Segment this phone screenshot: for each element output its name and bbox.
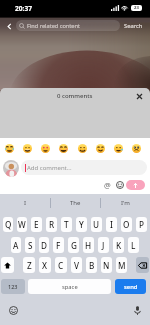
staticText: E <box>34 219 39 230</box>
button[interactable]: L <box>128 237 139 253</box>
staticText: I <box>24 199 27 207</box>
button[interactable]: H <box>83 237 94 253</box>
button[interactable]: Emoji reaction <box>129 141 144 156</box>
staticText: Find related content <box>27 22 80 30</box>
button[interactable]: F <box>53 237 64 253</box>
button[interactable]: R <box>46 217 57 232</box>
button[interactable]: Shift <box>1 257 14 273</box>
staticText: 23 <box>134 5 139 11</box>
staticText: R <box>49 219 55 230</box>
staticText: O <box>123 219 130 230</box>
button[interactable]: V <box>71 257 82 273</box>
staticText: L <box>131 240 136 251</box>
staticText: F <box>56 240 61 251</box>
staticText: space <box>62 283 78 291</box>
button[interactable]: Mention <box>102 179 113 190</box>
staticText: V <box>74 260 80 271</box>
button[interactable]: O <box>121 217 132 232</box>
staticText: J <box>102 240 105 251</box>
button[interactable]: D <box>39 237 49 253</box>
button[interactable]: Add comment... <box>21 160 147 175</box>
staticText: I <box>110 219 113 230</box>
button[interactable]: Voice input <box>131 304 143 316</box>
button[interactable]: Emoji reaction <box>75 141 90 156</box>
button[interactable]: Close <box>133 90 145 102</box>
button[interactable]: M <box>116 257 127 273</box>
staticText: The <box>70 199 81 207</box>
staticText: Add comment... <box>27 164 72 172</box>
button[interactable]: I <box>106 217 117 232</box>
button[interactable]: Search <box>124 22 143 30</box>
staticText: S <box>28 240 33 251</box>
staticText: M <box>118 260 126 271</box>
button[interactable]: Emoji <box>114 179 125 190</box>
staticText: A <box>13 240 19 251</box>
button[interactable]: Emoji reaction <box>38 141 53 156</box>
button[interactable]: T <box>61 217 72 232</box>
button[interactable]: Emoji reaction <box>93 141 108 156</box>
button[interactable]: Find related content <box>16 20 120 31</box>
button[interactable]: W <box>17 217 27 232</box>
button[interactable]: Emoji reaction <box>56 141 71 156</box>
button[interactable]: X <box>39 257 51 273</box>
button[interactable]: Q <box>3 217 13 232</box>
button[interactable]: space <box>28 279 111 294</box>
staticText: @ <box>104 180 111 190</box>
button[interactable]: P <box>136 217 147 232</box>
button[interactable]: Back <box>2 19 16 33</box>
button[interactable]: 123 <box>1 279 25 294</box>
button[interactable]: Z <box>23 257 35 273</box>
button[interactable]: Emoji keyboard <box>7 304 19 316</box>
staticText: Search <box>124 22 143 30</box>
button[interactable]: C <box>55 257 67 273</box>
button[interactable]: U <box>91 217 102 232</box>
button[interactable]: Emoji reaction <box>111 141 126 156</box>
staticText: W <box>18 219 26 230</box>
button[interactable]: Emoji reaction <box>2 141 17 156</box>
staticText: 20:37 <box>15 4 32 13</box>
staticText: Y <box>79 219 84 230</box>
staticText: I'm <box>121 199 130 207</box>
staticText: T <box>64 219 69 230</box>
button[interactable]: J <box>98 237 109 253</box>
staticText: X <box>42 260 48 271</box>
staticText: 123 <box>8 283 18 290</box>
button[interactable]: G <box>68 237 79 253</box>
staticText: H <box>85 240 92 251</box>
button[interactable]: send <box>115 279 146 294</box>
button[interactable]: I <box>0 194 50 211</box>
button[interactable]: Emoji reaction <box>20 141 35 156</box>
staticText: send <box>124 283 138 291</box>
button[interactable]: I'm <box>101 194 150 211</box>
staticText: K <box>116 240 122 251</box>
button[interactable]: E <box>31 217 42 232</box>
button[interactable]: K <box>113 237 124 253</box>
button[interactable]: N <box>101 257 112 273</box>
button[interactable]: A <box>11 237 21 253</box>
button[interactable]: S <box>25 237 35 253</box>
staticText: 0 comments <box>57 92 93 100</box>
button[interactable]: Y <box>76 217 87 232</box>
staticText: C <box>58 260 64 271</box>
button[interactable]: B <box>86 257 97 273</box>
button[interactable]: Delete <box>136 257 149 273</box>
staticText: D <box>41 240 47 251</box>
staticText: B <box>89 260 95 271</box>
staticText: G <box>71 240 77 251</box>
staticText: Z <box>27 260 32 271</box>
button[interactable]: Send <box>126 180 145 190</box>
staticText: P <box>139 219 144 230</box>
button[interactable]: The <box>51 194 100 211</box>
staticText: U <box>93 219 100 230</box>
staticText: Q <box>5 219 12 230</box>
staticText: N <box>103 260 110 271</box>
